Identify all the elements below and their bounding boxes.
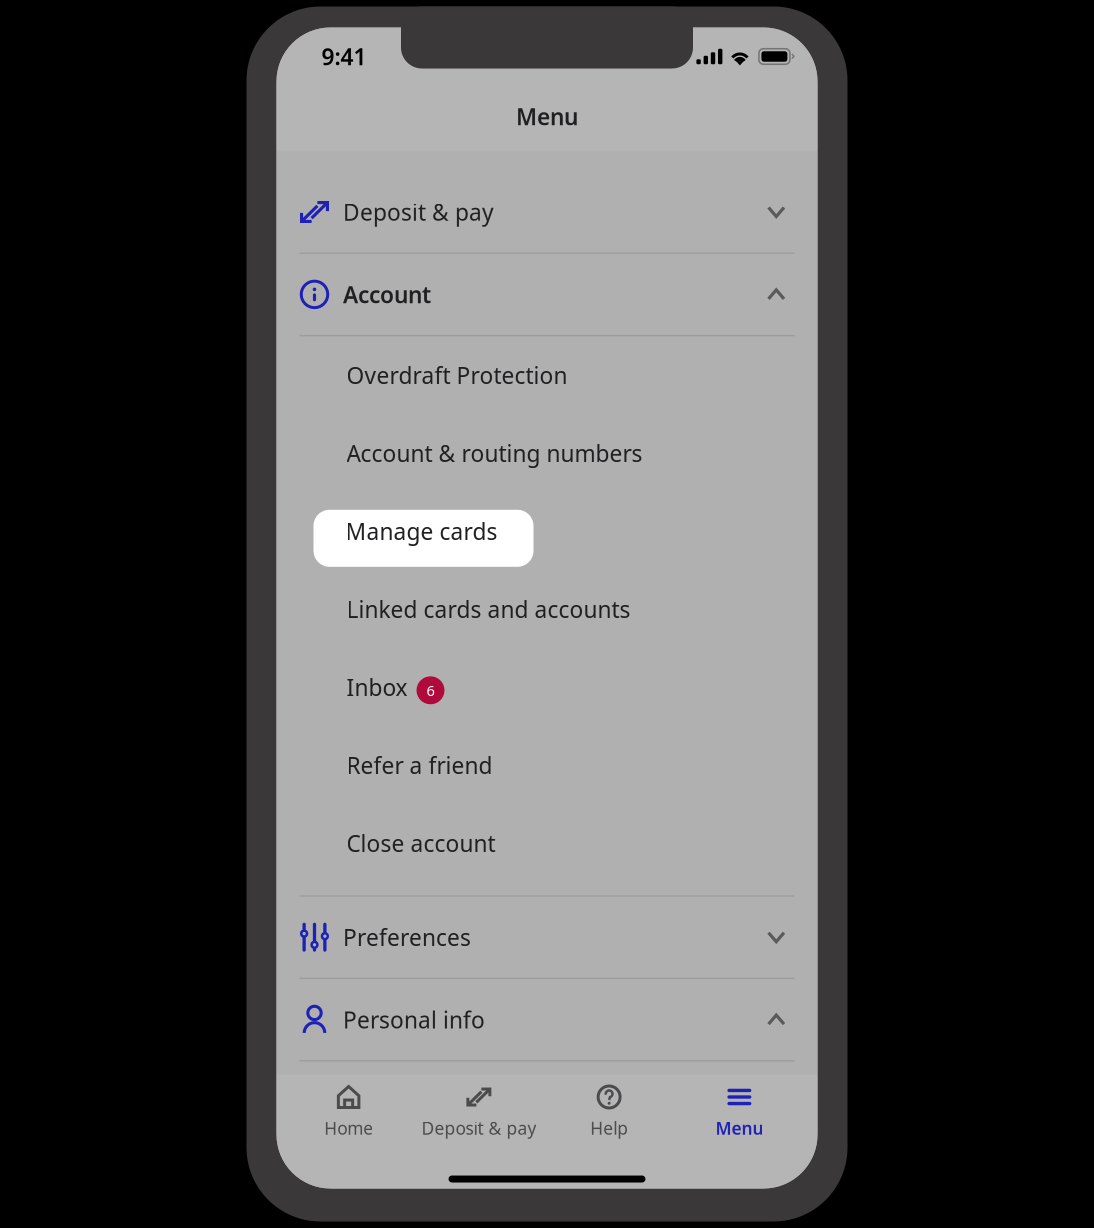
staticText: Refer a friend [346,750,492,780]
button[interactable]: Inbox [276,648,817,726]
button[interactable]: Personal info [276,979,817,1060]
button[interactable]: Preferences [276,897,817,978]
staticText: Home [324,1116,373,1139]
button[interactable]: Close account [276,804,817,882]
button[interactable]: Account [276,254,817,335]
staticText: Account & routing numbers [346,438,642,468]
button[interactable]: Deposit & pay [414,1083,544,1139]
staticText: Overdraft Protection [346,360,567,390]
button[interactable]: Deposit & pay [276,171,817,252]
staticText: Deposit & pay [421,1116,536,1139]
staticText: Menu [715,1116,763,1139]
staticText: Help [590,1116,628,1139]
button[interactable]: Help [544,1083,674,1139]
staticText: Account [343,279,431,309]
button[interactable]: Manage cards [276,492,817,570]
button[interactable]: Home [283,1083,414,1139]
staticText: Personal info [343,1004,485,1035]
staticText: Deposit & pay [343,197,494,227]
staticText: Linked cards and accounts [346,594,630,624]
staticText: 9:41 [321,41,366,71]
staticText: Preferences [343,922,471,952]
button[interactable]: Overdraft Protection [276,336,817,414]
staticText: Manage cards [345,516,497,546]
staticText: 6 [426,681,434,700]
staticText: Menu [516,101,578,131]
button[interactable]: Account & routing numbers [276,414,817,492]
staticText: Close account [346,828,495,858]
staticText: Inbox [346,672,407,702]
button[interactable]: Refer a friend [276,726,817,804]
button[interactable]: Linked cards and accounts [276,570,817,648]
button[interactable]: Menu [674,1083,804,1139]
